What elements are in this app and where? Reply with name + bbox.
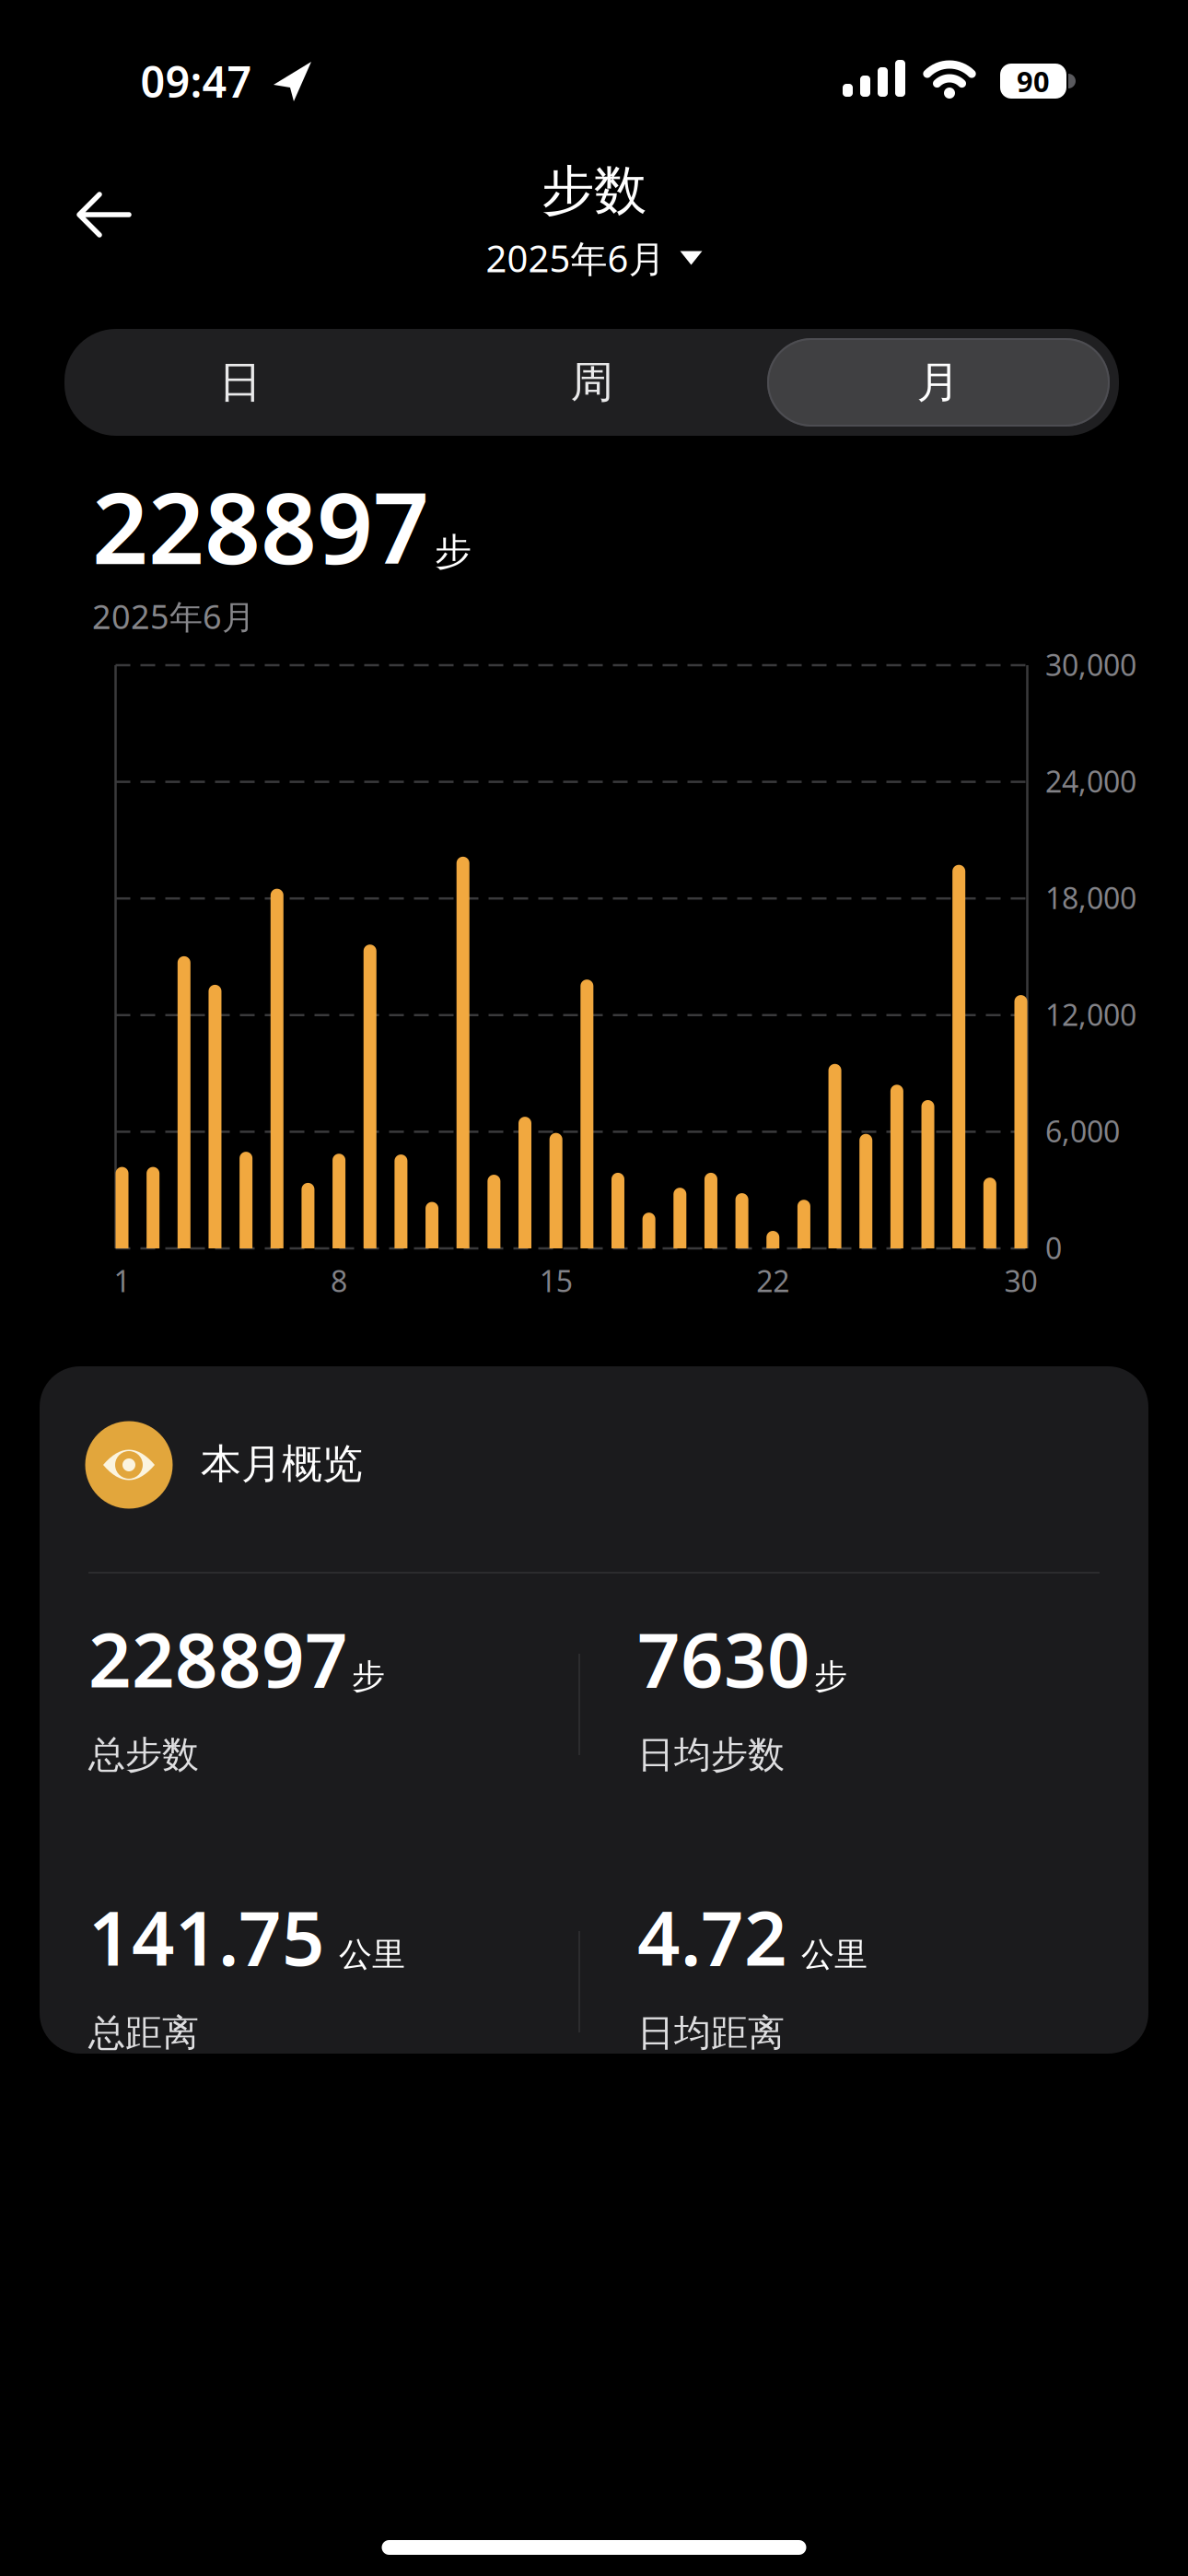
staticText: 2025年6月 bbox=[92, 594, 255, 638]
staticText: 公里 bbox=[791, 1934, 868, 1975]
button[interactable]: 2025年6月 bbox=[486, 233, 702, 282]
button[interactable]: 月 bbox=[763, 329, 1114, 436]
staticText: 月 bbox=[917, 356, 960, 409]
staticText: 步 bbox=[435, 529, 472, 574]
staticText: 总距离 bbox=[88, 2010, 199, 2056]
staticText: 总步数 bbox=[88, 1732, 199, 1777]
staticText: 12,000 bbox=[1045, 995, 1136, 1034]
staticText: 周 bbox=[571, 356, 614, 409]
staticText: 22 bbox=[756, 1261, 790, 1300]
staticText: 30 bbox=[1004, 1261, 1037, 1300]
staticText: 09:47 bbox=[140, 53, 252, 110]
button[interactable]: 周 bbox=[417, 329, 768, 436]
staticText: 228897 bbox=[88, 1609, 348, 1708]
button[interactable]: 日 bbox=[65, 329, 416, 436]
staticText: 90 bbox=[1017, 62, 1050, 100]
staticText: 24,000 bbox=[1045, 762, 1136, 801]
staticText: 4.72 bbox=[637, 1887, 787, 1986]
staticText: 日均距离 bbox=[637, 2010, 785, 2056]
staticText: 30,000 bbox=[1045, 645, 1136, 684]
staticText: 日 bbox=[219, 356, 262, 409]
staticText: 15 bbox=[539, 1261, 573, 1300]
staticText: 步 bbox=[352, 1656, 385, 1697]
staticText: 141.75 bbox=[88, 1887, 325, 1986]
staticText: 1 bbox=[114, 1261, 130, 1300]
staticText: 本月概览 bbox=[201, 1439, 363, 1489]
staticText: 6,000 bbox=[1045, 1111, 1120, 1151]
button[interactable]: Back bbox=[66, 181, 142, 248]
staticText: 步数 bbox=[542, 158, 646, 223]
staticText: 步 bbox=[814, 1656, 847, 1697]
staticText: 18,000 bbox=[1045, 878, 1136, 917]
staticText: 0 bbox=[1045, 1228, 1062, 1267]
staticText: 公里 bbox=[329, 1934, 405, 1975]
staticText: 日均步数 bbox=[637, 1732, 785, 1777]
staticText: 7630 bbox=[637, 1609, 810, 1708]
staticText: 228897 bbox=[92, 461, 429, 591]
staticText: 8 bbox=[331, 1261, 347, 1300]
staticText: 2025年6月 bbox=[486, 233, 665, 282]
